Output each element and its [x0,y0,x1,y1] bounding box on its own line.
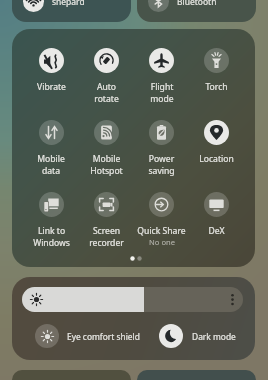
button[interactable]: Link to Windows [24,192,78,260]
button[interactable]: Dark mode [159,324,236,348]
button[interactable]: More brightness options [22,287,243,312]
button[interactable]: Quick Share [134,192,188,260]
button[interactable]: More brightness options [227,293,238,306]
staticText: Mobile data [37,153,65,177]
button[interactable]: Torch [189,48,243,116]
button[interactable]: Flight mode [134,48,188,116]
button[interactable]: Location [189,120,243,188]
staticText: Power saving [148,153,175,177]
button[interactable]: Bluetooth [137,0,256,22]
staticText: shepard [52,0,85,8]
staticText: Mobile Hotspot [90,153,123,177]
staticText: No one [149,237,175,247]
button[interactable] [137,370,256,380]
button[interactable]: shepard [12,0,131,22]
staticText: Screen recorder [89,225,124,249]
staticText: Auto rotate [94,81,119,105]
button[interactable]: Auto rotate [79,48,133,116]
button[interactable]: Mobile data [24,120,78,188]
staticText: Torch [205,81,228,93]
staticText: Dark mode [192,331,236,342]
staticText: DeX [208,225,225,237]
staticText: Location [199,153,234,165]
staticText: Flight mode [150,81,174,105]
staticText: Link to Windows [33,225,70,249]
button[interactable]: DeX [189,192,243,260]
staticText: Vibrate [37,81,66,93]
staticText: Eye comfort shield [67,331,140,342]
button[interactable] [12,370,131,380]
button[interactable]: Vibrate [24,48,78,116]
button[interactable]: Mobile Hotspot [79,120,133,188]
button[interactable]: Eye comfort shield [35,324,140,348]
staticText: Bluetooth [177,0,217,8]
button[interactable]: Screen recorder [79,192,133,260]
button[interactable]: Power saving [134,120,188,188]
staticText: Quick Share [137,225,186,237]
